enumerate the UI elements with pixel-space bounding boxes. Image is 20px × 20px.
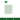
button[interactable]: Home tab — [0, 18, 7, 20]
button[interactable]: Profile tab — [13, 18, 20, 20]
button[interactable]: Featured — [4, 5, 12, 14]
